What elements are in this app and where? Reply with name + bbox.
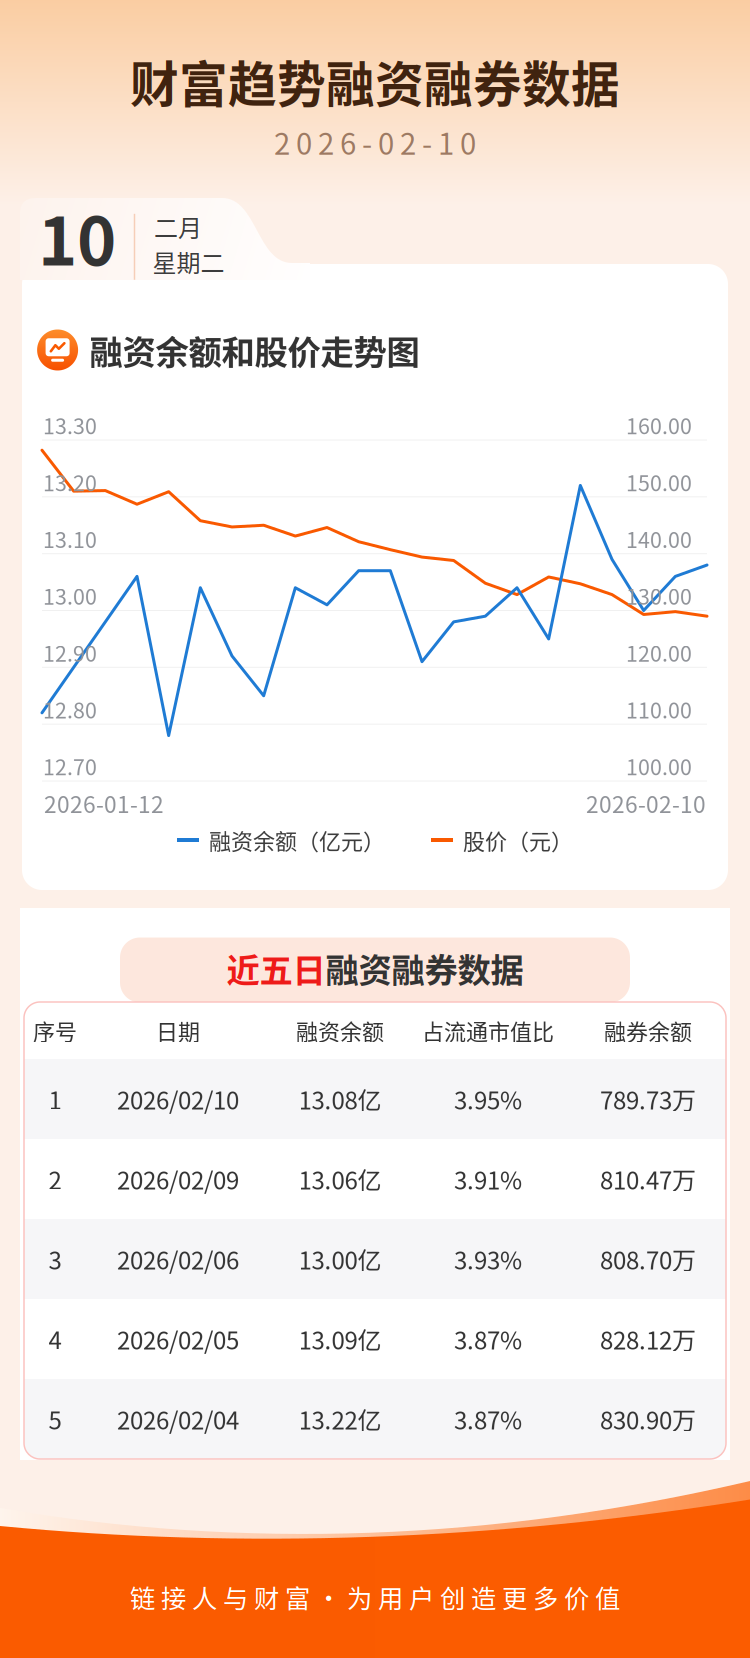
- staticText: 110.00: [626, 694, 692, 725]
- staticText: 13.00: [43, 580, 97, 611]
- staticText: 2026-02-10: [274, 121, 476, 163]
- staticText: 13.00亿: [298, 1242, 381, 1276]
- staticText: 2026/02/04: [117, 1402, 239, 1436]
- staticText: 星期二: [152, 244, 224, 279]
- staticText: 2026-02-10: [586, 787, 706, 819]
- staticText: 二月: [154, 209, 202, 244]
- staticText: 3.95%: [454, 1082, 522, 1116]
- staticText: 808.70万: [600, 1242, 696, 1276]
- staticText: 13.22亿: [298, 1402, 381, 1436]
- staticText: 融券余额: [604, 1015, 692, 1046]
- staticText: 13.10: [43, 523, 97, 554]
- staticText: 3.91%: [454, 1162, 522, 1196]
- staticText: 830.90万: [600, 1402, 696, 1436]
- staticText: 828.12万: [600, 1322, 696, 1356]
- staticText: 13.06亿: [298, 1162, 381, 1196]
- staticText: 5: [48, 1402, 61, 1436]
- staticText: 3.93%: [454, 1242, 522, 1276]
- staticText: 3.87%: [454, 1402, 522, 1436]
- staticText: 3: [48, 1242, 61, 1276]
- staticText: 12.70: [43, 751, 97, 781]
- staticText: 序号: [33, 1015, 77, 1046]
- staticText: 789.73万: [600, 1082, 696, 1116]
- staticText: 810.47万: [600, 1162, 696, 1196]
- staticText: 2026/02/09: [117, 1162, 239, 1196]
- staticText: 1: [48, 1082, 61, 1116]
- staticText: 融资余额和股价走势图: [89, 326, 419, 374]
- staticText: 150.00: [626, 466, 692, 497]
- staticText: 10: [38, 188, 116, 285]
- staticText: 2026-01-12: [44, 787, 164, 819]
- staticText: 日期: [156, 1015, 200, 1046]
- staticText: 160.00: [626, 410, 692, 440]
- staticText: 3.87%: [454, 1322, 522, 1356]
- staticText: 近五日: [226, 944, 325, 992]
- staticText: 13.20: [43, 466, 97, 497]
- staticText: 融资余额: [296, 1015, 384, 1046]
- staticText: 2026/02/10: [117, 1082, 239, 1116]
- staticText: 12.90: [43, 637, 97, 668]
- staticText: 股价（元）: [463, 824, 573, 856]
- staticText: 130.00: [626, 580, 692, 611]
- staticText: 占流通市值比: [422, 1015, 554, 1046]
- staticText: 2026/02/06: [117, 1242, 239, 1276]
- staticText: 链接人与财富·为用户创造更多价值: [130, 1579, 620, 1615]
- staticText: 4: [48, 1322, 61, 1356]
- staticText: 120.00: [626, 637, 692, 668]
- staticText: 140.00: [626, 523, 692, 554]
- staticText: 融资融券数据: [325, 944, 523, 992]
- staticText: 13.08亿: [298, 1082, 381, 1116]
- staticText: 2026/02/05: [117, 1322, 239, 1356]
- staticText: 融资余额（亿元）: [209, 824, 385, 856]
- staticText: 2: [48, 1162, 61, 1196]
- staticText: 13.09亿: [298, 1322, 381, 1356]
- staticText: 财富趋势融资融券数据: [130, 46, 620, 116]
- staticText: 12.80: [43, 694, 97, 725]
- staticText: 100.00: [626, 751, 692, 781]
- staticText: 13.30: [43, 410, 97, 440]
